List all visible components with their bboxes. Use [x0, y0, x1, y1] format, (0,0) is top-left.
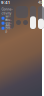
staticText: Bluetooth: [5, 18, 11, 28]
button[interactable]: Bluetooth: [1, 21, 12, 25]
staticText: Connectivity: [1, 7, 12, 15]
staticText: 9:41: [1, 0, 10, 5]
staticText: Wi-Fi: [5, 15, 10, 21]
button[interactable]: Wi-Fi: [1, 16, 12, 20]
button[interactable]: Toggle: [23, 20, 28, 25]
button[interactable]: AirDrop: [1, 26, 12, 30]
button[interactable]: Toggle: [16, 20, 21, 25]
staticText: 4G: [38, 0, 43, 5]
staticText: AirDrop: [5, 23, 11, 33]
